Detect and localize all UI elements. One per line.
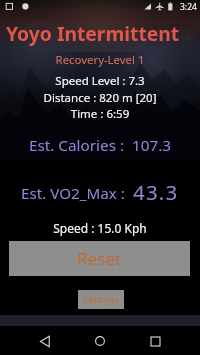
- button[interactable]: Home: [86, 327, 114, 355]
- staticText: Speed Level : 7.3: [0, 73, 200, 89]
- staticText: Reset: [77, 247, 122, 270]
- button[interactable]: Settings: [78, 290, 124, 309]
- staticText: 3:24: [180, 1, 197, 13]
- staticText: Recovery-Level 1: [0, 52, 200, 68]
- staticText: Est. Calories : 107.3: [0, 135, 200, 156]
- staticText: Distance : 820 m [20]: [0, 90, 200, 106]
- staticText: Speed : 15.0 Kph: [0, 220, 200, 236]
- staticText: Time : 6:59: [0, 106, 200, 122]
- staticText: 43.3: [133, 178, 179, 206]
- staticText: Yoyo Intermittent: [6, 20, 180, 46]
- button[interactable]: Recents: [141, 327, 169, 355]
- button[interactable]: Back: [31, 327, 59, 355]
- staticText: 1.33: [181, 34, 193, 42]
- staticText: Est. VO2_Max :: [21, 183, 133, 204]
- staticText: Settings: [83, 293, 120, 306]
- button[interactable]: Reset: [9, 241, 190, 276]
